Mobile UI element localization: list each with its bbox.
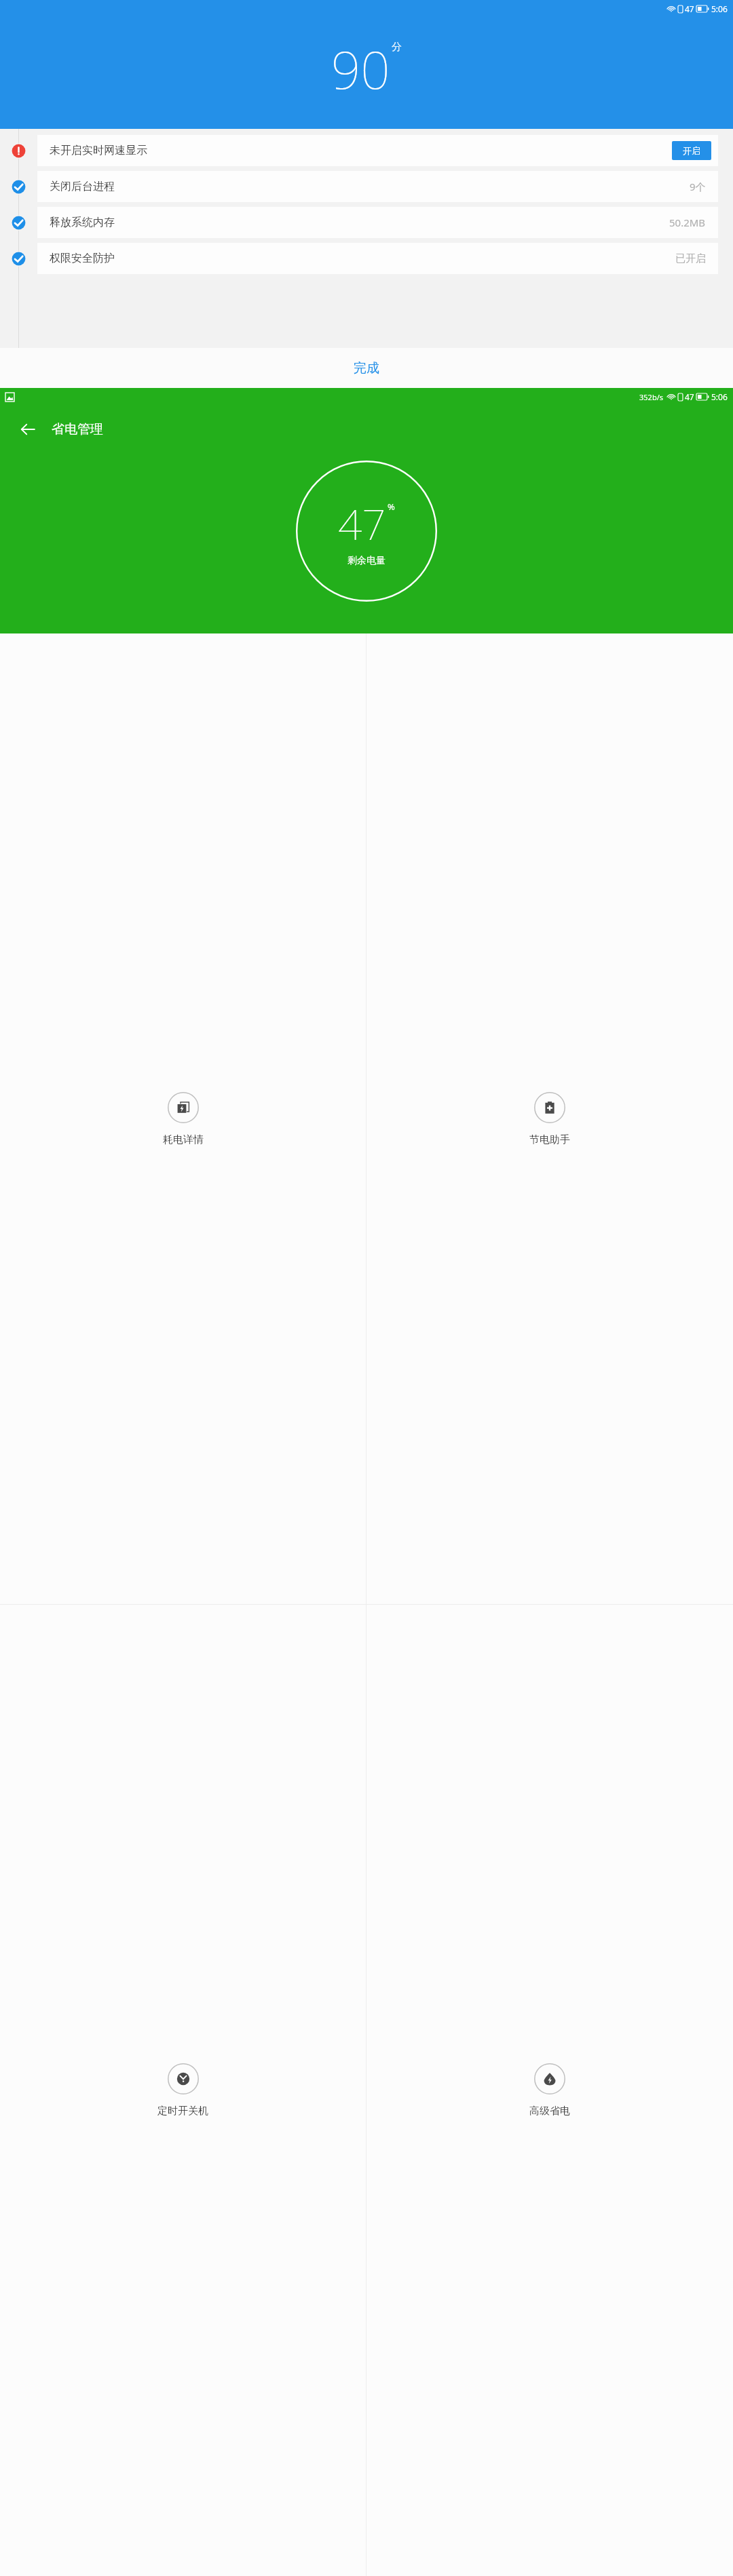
staticText: 5:06 xyxy=(711,3,728,14)
staticText: 开启 xyxy=(683,145,700,156)
staticText: 未开启实时网速显示 xyxy=(50,144,672,157)
staticText: 90 xyxy=(331,34,390,104)
staticText: 47 xyxy=(685,391,694,402)
staticText: 47 xyxy=(685,3,694,14)
button[interactable]: Back xyxy=(12,414,43,445)
staticText: 9个 xyxy=(690,180,706,193)
staticText: 高级省电 xyxy=(529,2105,570,2118)
staticText: 耗电详情 xyxy=(163,1133,204,1146)
staticText: 已开启 xyxy=(675,252,706,265)
staticText: 权限安全防护 xyxy=(50,252,675,265)
button[interactable]: 耗电详情 xyxy=(0,633,366,1604)
button[interactable]: 释放系统内存 xyxy=(37,207,718,238)
staticText: 5:06 xyxy=(711,391,728,402)
staticText: 剩余电量 xyxy=(347,555,386,567)
staticText: 节电助手 xyxy=(529,1133,570,1146)
button[interactable]: 权限安全防护 xyxy=(37,243,718,274)
staticText: 释放系统内存 xyxy=(50,216,669,229)
staticText: 关闭后台进程 xyxy=(50,180,690,193)
button[interactable]: 高级省电 xyxy=(366,1605,733,2576)
staticText: 47 xyxy=(338,495,386,552)
staticText: 352b/s xyxy=(639,392,664,402)
staticText: 完成 xyxy=(354,360,379,376)
staticText: 50.2MB xyxy=(669,216,706,229)
button[interactable]: 开启 xyxy=(672,141,711,160)
staticText: 省电管理 xyxy=(52,421,103,437)
button[interactable]: 未开启实时网速显示 xyxy=(37,135,718,166)
button[interactable]: 关闭后台进程 xyxy=(37,171,718,202)
staticText: % xyxy=(388,501,395,513)
button[interactable]: 完成 xyxy=(0,348,733,388)
button[interactable]: 节电助手 xyxy=(366,633,733,1604)
staticText: 分 xyxy=(392,41,402,54)
button[interactable]: 定时开关机 xyxy=(0,1605,366,2576)
staticText: 定时开关机 xyxy=(157,2105,208,2118)
